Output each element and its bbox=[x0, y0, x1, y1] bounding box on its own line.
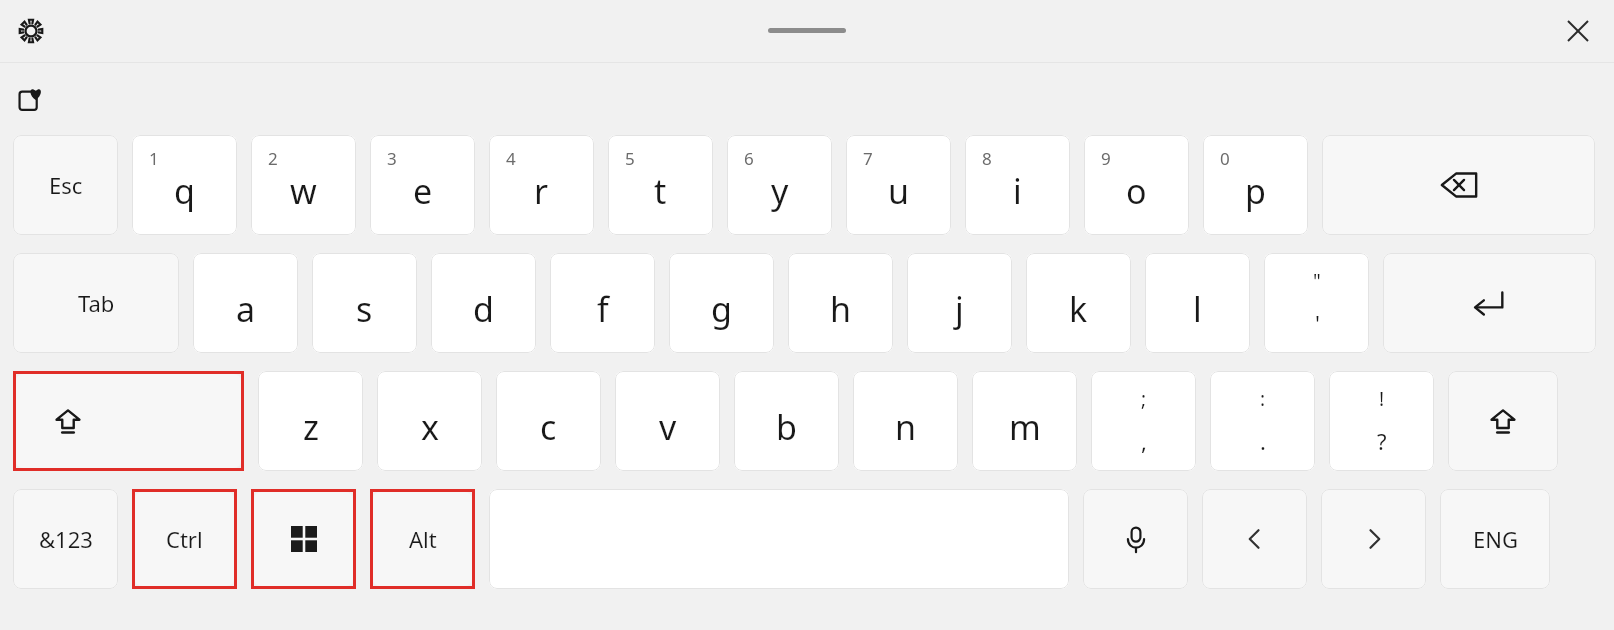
staticText: p bbox=[1245, 168, 1266, 214]
staticText: ; bbox=[1141, 386, 1147, 412]
button[interactable]: Enter bbox=[1383, 253, 1596, 353]
staticText: z bbox=[303, 404, 319, 450]
button[interactable]: x bbox=[377, 371, 482, 471]
staticText: q bbox=[174, 168, 195, 214]
button[interactable]: j bbox=[907, 253, 1012, 353]
staticText: 4 bbox=[506, 147, 516, 170]
button[interactable]: " bbox=[1264, 253, 1369, 353]
staticText: c bbox=[540, 404, 557, 450]
button[interactable]: Windows bbox=[251, 489, 356, 589]
staticText: , bbox=[1141, 426, 1147, 456]
button[interactable]: f bbox=[550, 253, 655, 353]
button[interactable]: Shift bbox=[1448, 371, 1558, 471]
staticText: . bbox=[1260, 426, 1266, 456]
button[interactable]: d bbox=[431, 253, 536, 353]
staticText: 9 bbox=[1101, 147, 1111, 170]
staticText: 8 bbox=[982, 147, 992, 170]
staticText: Alt bbox=[409, 524, 437, 554]
button[interactable]: 0 bbox=[1203, 135, 1308, 235]
button[interactable]: a bbox=[193, 253, 298, 353]
staticText: m bbox=[1009, 404, 1041, 450]
button[interactable]: : bbox=[1210, 371, 1315, 471]
button[interactable]: Emoji and favourites bbox=[13, 81, 49, 117]
staticText: Tab bbox=[78, 288, 115, 318]
button[interactable]: ! bbox=[1329, 371, 1434, 471]
staticText: t bbox=[654, 168, 667, 214]
staticText: 6 bbox=[744, 147, 754, 170]
button[interactable]: 4 bbox=[489, 135, 594, 235]
staticText: 2 bbox=[268, 147, 278, 170]
staticText: j bbox=[955, 286, 964, 332]
button[interactable]: Settings bbox=[13, 13, 49, 49]
button[interactable]: ; bbox=[1091, 371, 1196, 471]
button[interactable]: 7 bbox=[846, 135, 951, 235]
staticText: k bbox=[1069, 286, 1088, 332]
staticText: : bbox=[1260, 386, 1266, 412]
staticText: v bbox=[659, 404, 677, 450]
staticText: ? bbox=[1377, 426, 1387, 456]
button[interactable]: v bbox=[615, 371, 720, 471]
button[interactable]: s bbox=[312, 253, 417, 353]
button[interactable]: ENG bbox=[1440, 489, 1550, 589]
staticText: ! bbox=[1379, 386, 1385, 412]
staticText: 3 bbox=[387, 147, 397, 170]
button[interactable]: Esc bbox=[13, 135, 118, 235]
button[interactable]: Left bbox=[1202, 489, 1307, 589]
button[interactable]: &123 bbox=[13, 489, 118, 589]
button[interactable]: Space bbox=[489, 489, 1069, 589]
button[interactable]: 6 bbox=[727, 135, 832, 235]
staticText: a bbox=[236, 286, 256, 332]
button[interactable]: 3 bbox=[370, 135, 475, 235]
staticText: " bbox=[1313, 268, 1321, 294]
button[interactable]: Backspace bbox=[1322, 135, 1595, 235]
staticText: u bbox=[888, 168, 910, 214]
staticText: ' bbox=[1315, 308, 1320, 338]
staticText: n bbox=[895, 404, 917, 450]
staticText: 7 bbox=[863, 147, 873, 170]
button[interactable]: 9 bbox=[1084, 135, 1189, 235]
button[interactable]: Close bbox=[1558, 11, 1598, 51]
button[interactable]: b bbox=[734, 371, 839, 471]
staticText: b bbox=[776, 404, 797, 450]
staticText: o bbox=[1126, 168, 1147, 214]
button[interactable]: Ctrl bbox=[132, 489, 237, 589]
staticText: g bbox=[711, 286, 732, 332]
staticText: 1 bbox=[149, 147, 159, 170]
button[interactable]: 2 bbox=[251, 135, 356, 235]
button[interactable]: Voice input bbox=[1083, 489, 1188, 589]
button[interactable]: 1 bbox=[132, 135, 237, 235]
staticText: ENG bbox=[1473, 524, 1518, 554]
staticText: r bbox=[534, 168, 549, 214]
staticText: e bbox=[413, 168, 433, 214]
button[interactable]: Shift bbox=[13, 371, 244, 471]
staticText: i bbox=[1013, 168, 1022, 214]
button[interactable]: 8 bbox=[965, 135, 1070, 235]
button[interactable]: m bbox=[972, 371, 1077, 471]
staticText: x bbox=[421, 404, 439, 450]
staticText: f bbox=[597, 286, 609, 332]
staticText: h bbox=[830, 286, 852, 332]
button[interactable]: Drag handle bbox=[768, 28, 846, 33]
staticText: s bbox=[356, 286, 373, 332]
button[interactable]: g bbox=[669, 253, 774, 353]
button[interactable]: Tab bbox=[13, 253, 179, 353]
staticText: w bbox=[290, 168, 317, 214]
button[interactable]: c bbox=[496, 371, 601, 471]
button[interactable]: 5 bbox=[608, 135, 713, 235]
staticText: 0 bbox=[1220, 147, 1230, 170]
button[interactable]: Right bbox=[1321, 489, 1426, 589]
staticText: Ctrl bbox=[166, 524, 203, 554]
button[interactable]: Alt bbox=[370, 489, 475, 589]
staticText: l bbox=[1193, 286, 1202, 332]
button[interactable]: z bbox=[258, 371, 363, 471]
button[interactable]: k bbox=[1026, 253, 1131, 353]
staticText: d bbox=[473, 286, 494, 332]
button[interactable]: n bbox=[853, 371, 958, 471]
staticText: Esc bbox=[49, 170, 83, 200]
staticText: 5 bbox=[625, 147, 635, 170]
button[interactable]: h bbox=[788, 253, 893, 353]
staticText: y bbox=[771, 168, 789, 214]
staticText: &123 bbox=[39, 524, 93, 554]
button[interactable]: l bbox=[1145, 253, 1250, 353]
